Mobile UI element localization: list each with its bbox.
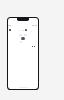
button[interactable]: Menu — [9, 29, 11, 31]
button[interactable] — [21, 37, 25, 40]
button[interactable]: More options — [25, 29, 27, 31]
